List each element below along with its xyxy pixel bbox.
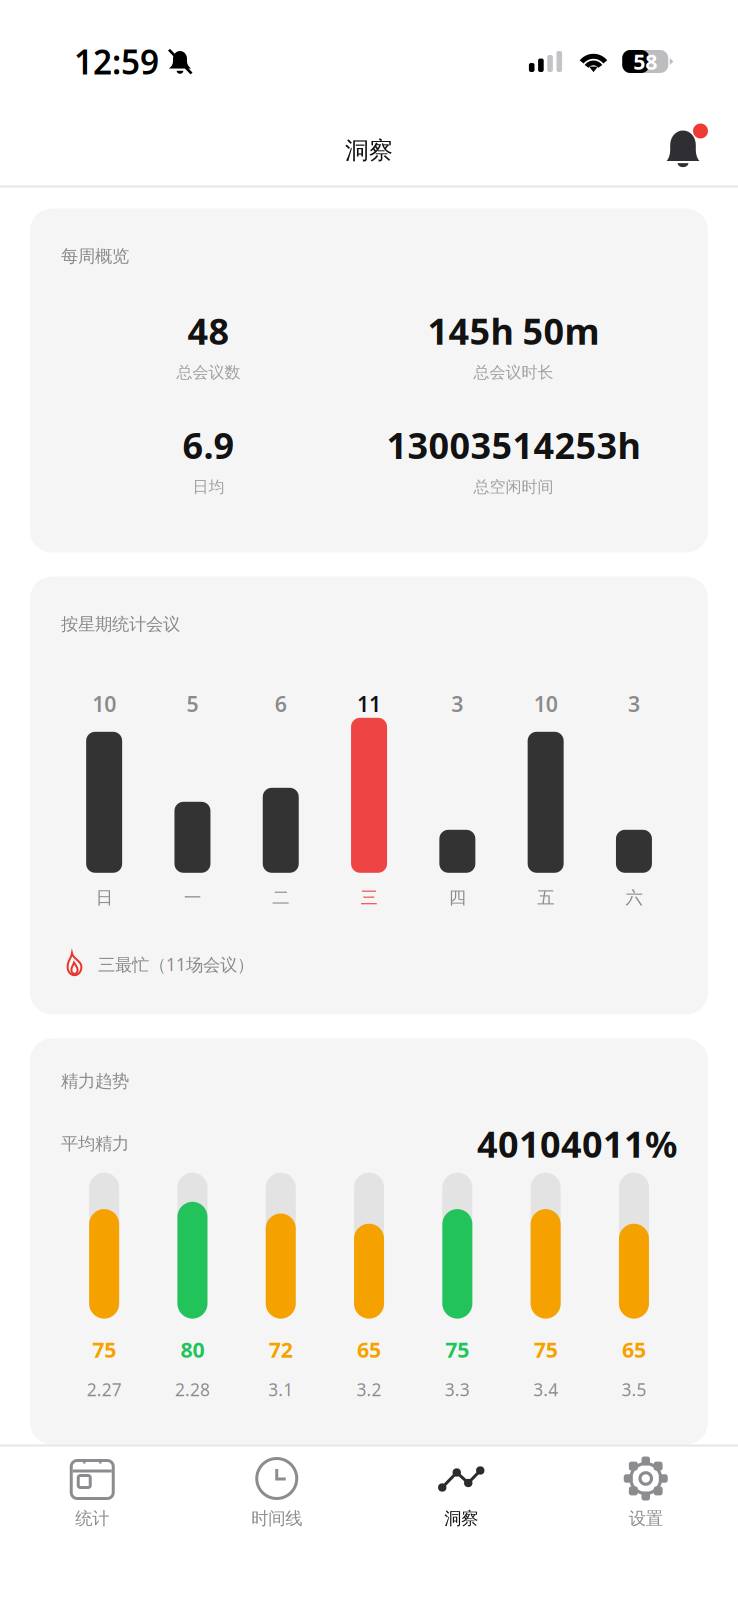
staticText: 日 [96, 887, 113, 908]
staticText: 三 [360, 887, 377, 908]
staticText: 统计 [75, 1508, 109, 1529]
staticText: 3 [451, 690, 463, 718]
staticText: 65 [357, 1335, 381, 1364]
button[interactable]: 通知 [652, 120, 712, 180]
staticText: 四 [449, 887, 466, 908]
staticText: 时间线 [251, 1508, 302, 1529]
staticText: 每周概览 [61, 245, 129, 267]
staticText: 总空闲时间 [473, 477, 553, 497]
staticText: 6.9 [182, 421, 234, 469]
staticText: 设置 [629, 1508, 663, 1529]
staticText: 3.1 [268, 1378, 293, 1401]
staticText: 2.27 [87, 1378, 122, 1401]
staticText: 总会议数 [176, 363, 240, 382]
staticText: 3.2 [356, 1378, 381, 1401]
staticText: 五 [537, 887, 554, 908]
staticText: 75 [92, 1335, 116, 1364]
button[interactable]: 洞察 [369, 1446, 553, 1547]
staticText: 三最忙（11场会议） [98, 953, 254, 976]
staticText: 72 [269, 1335, 293, 1364]
staticText: 3 [628, 690, 640, 718]
staticText: 65 [622, 1335, 646, 1364]
button[interactable]: 统计 [0, 1446, 184, 1547]
staticText: 日均 [192, 477, 224, 497]
staticText: 5 [186, 690, 198, 718]
staticText: 6 [275, 690, 287, 718]
staticText: 10 [534, 690, 558, 718]
staticText: 一 [184, 887, 201, 908]
staticText: 11 [357, 690, 381, 718]
staticText: 按星期统计会议 [61, 613, 180, 635]
button[interactable]: 时间线 [184, 1446, 369, 1547]
staticText: 六 [625, 887, 642, 908]
staticText: 3.3 [445, 1378, 470, 1401]
staticText: 13003514253h [386, 421, 640, 469]
staticText: 洞察 [444, 1508, 478, 1529]
staticText: 40104011% [477, 1120, 677, 1168]
staticText: 2.28 [175, 1378, 210, 1401]
staticText: 145h 50m [427, 307, 599, 355]
staticText: 3.4 [533, 1378, 558, 1401]
staticText: 75 [445, 1335, 469, 1364]
staticText: 洞察 [345, 136, 393, 165]
staticText: 精力趋势 [61, 1070, 129, 1092]
staticText: 75 [534, 1335, 558, 1364]
button[interactable]: 设置 [553, 1446, 738, 1547]
staticText: 3.5 [621, 1378, 646, 1401]
staticText: 48 [187, 307, 229, 355]
staticText: 10 [92, 690, 116, 718]
staticText: 总会议时长 [473, 363, 553, 382]
staticText: 58 [633, 47, 657, 76]
staticText: 80 [180, 1335, 204, 1364]
staticText: 二 [272, 887, 289, 908]
staticText: 平均精力 [61, 1133, 129, 1154]
staticText: 12:59 [74, 39, 159, 84]
